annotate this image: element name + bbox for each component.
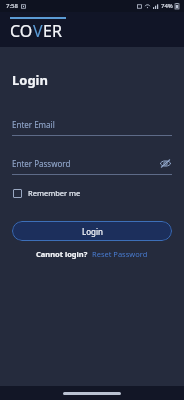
staticText: Login (82, 226, 103, 237)
staticText: Enter Email (12, 119, 55, 130)
button[interactable]: Login (12, 221, 172, 241)
staticText: V (33, 20, 43, 42)
staticText: Reset Password (92, 249, 148, 259)
staticText: CO (10, 20, 33, 42)
staticText: 74% (161, 2, 173, 10)
button[interactable]: Remember me (12, 186, 82, 200)
button[interactable]: Show password (158, 156, 172, 170)
staticText: Remember me (28, 188, 81, 198)
button[interactable]: Reset Password (92, 249, 148, 259)
staticText: Enter Password (12, 158, 71, 169)
staticText: ER (43, 20, 62, 42)
staticText: Cannot login? (36, 249, 88, 259)
staticText: 7:58 (6, 2, 18, 10)
staticText: Login (12, 71, 48, 89)
